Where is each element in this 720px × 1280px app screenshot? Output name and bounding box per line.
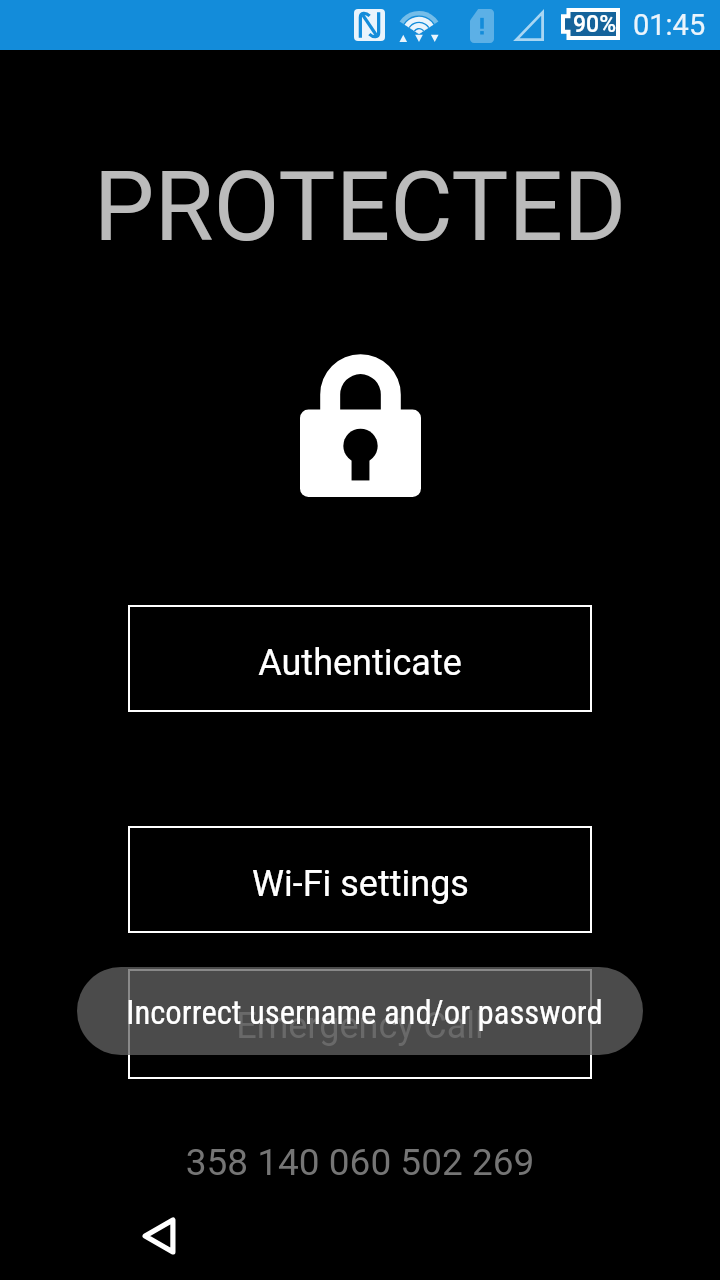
staticText: Authenticate <box>258 642 462 684</box>
button[interactable]: Incorrect username and/or password <box>77 967 643 1055</box>
staticText: Emergency Call <box>236 1005 484 1047</box>
button[interactable]: Authenticate <box>128 605 592 712</box>
button[interactable]: Back <box>127 1204 191 1268</box>
staticText: Wi-Fi settings <box>252 863 469 905</box>
button[interactable]: Emergency Call <box>128 969 592 1079</box>
button[interactable]: Wi-Fi settings <box>128 826 592 933</box>
staticText: 358 140 060 502 269 <box>0 1141 720 1184</box>
staticText: Incorrect username and/or password <box>126 994 603 1032</box>
staticText: PROTECTED <box>0 151 720 264</box>
staticText: 01:45 <box>633 8 706 42</box>
staticText: 90% <box>573 11 617 38</box>
